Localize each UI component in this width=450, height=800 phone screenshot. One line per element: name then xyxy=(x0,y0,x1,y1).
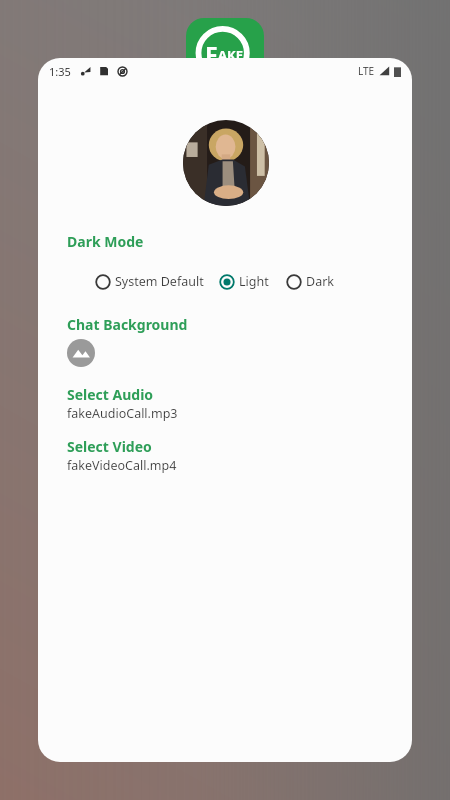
button[interactable]: Chat background image xyxy=(67,339,95,367)
staticText: fakeAudioCall.mp3 xyxy=(67,405,178,422)
staticText: AKE xyxy=(218,46,243,64)
staticText: Select Video xyxy=(67,437,152,456)
button[interactable]: Light xyxy=(219,273,269,290)
button[interactable]: System Default xyxy=(95,273,204,290)
staticText: Dark xyxy=(306,273,334,290)
staticText: Chat Background xyxy=(67,315,188,334)
staticText: System Default xyxy=(115,273,204,290)
staticText: Dark Mode xyxy=(67,232,144,251)
staticText: 1:35 xyxy=(49,64,71,79)
other: Fake app icon xyxy=(186,18,264,96)
staticText: F xyxy=(205,39,218,70)
staticText: LTE xyxy=(358,64,375,78)
staticText: Light xyxy=(239,273,269,290)
button[interactable]: Dark xyxy=(286,273,334,290)
staticText: fakeVideoCall.mp4 xyxy=(67,457,177,474)
button[interactable]: Profile picture xyxy=(183,120,269,206)
staticText: Select Audio xyxy=(67,385,154,404)
